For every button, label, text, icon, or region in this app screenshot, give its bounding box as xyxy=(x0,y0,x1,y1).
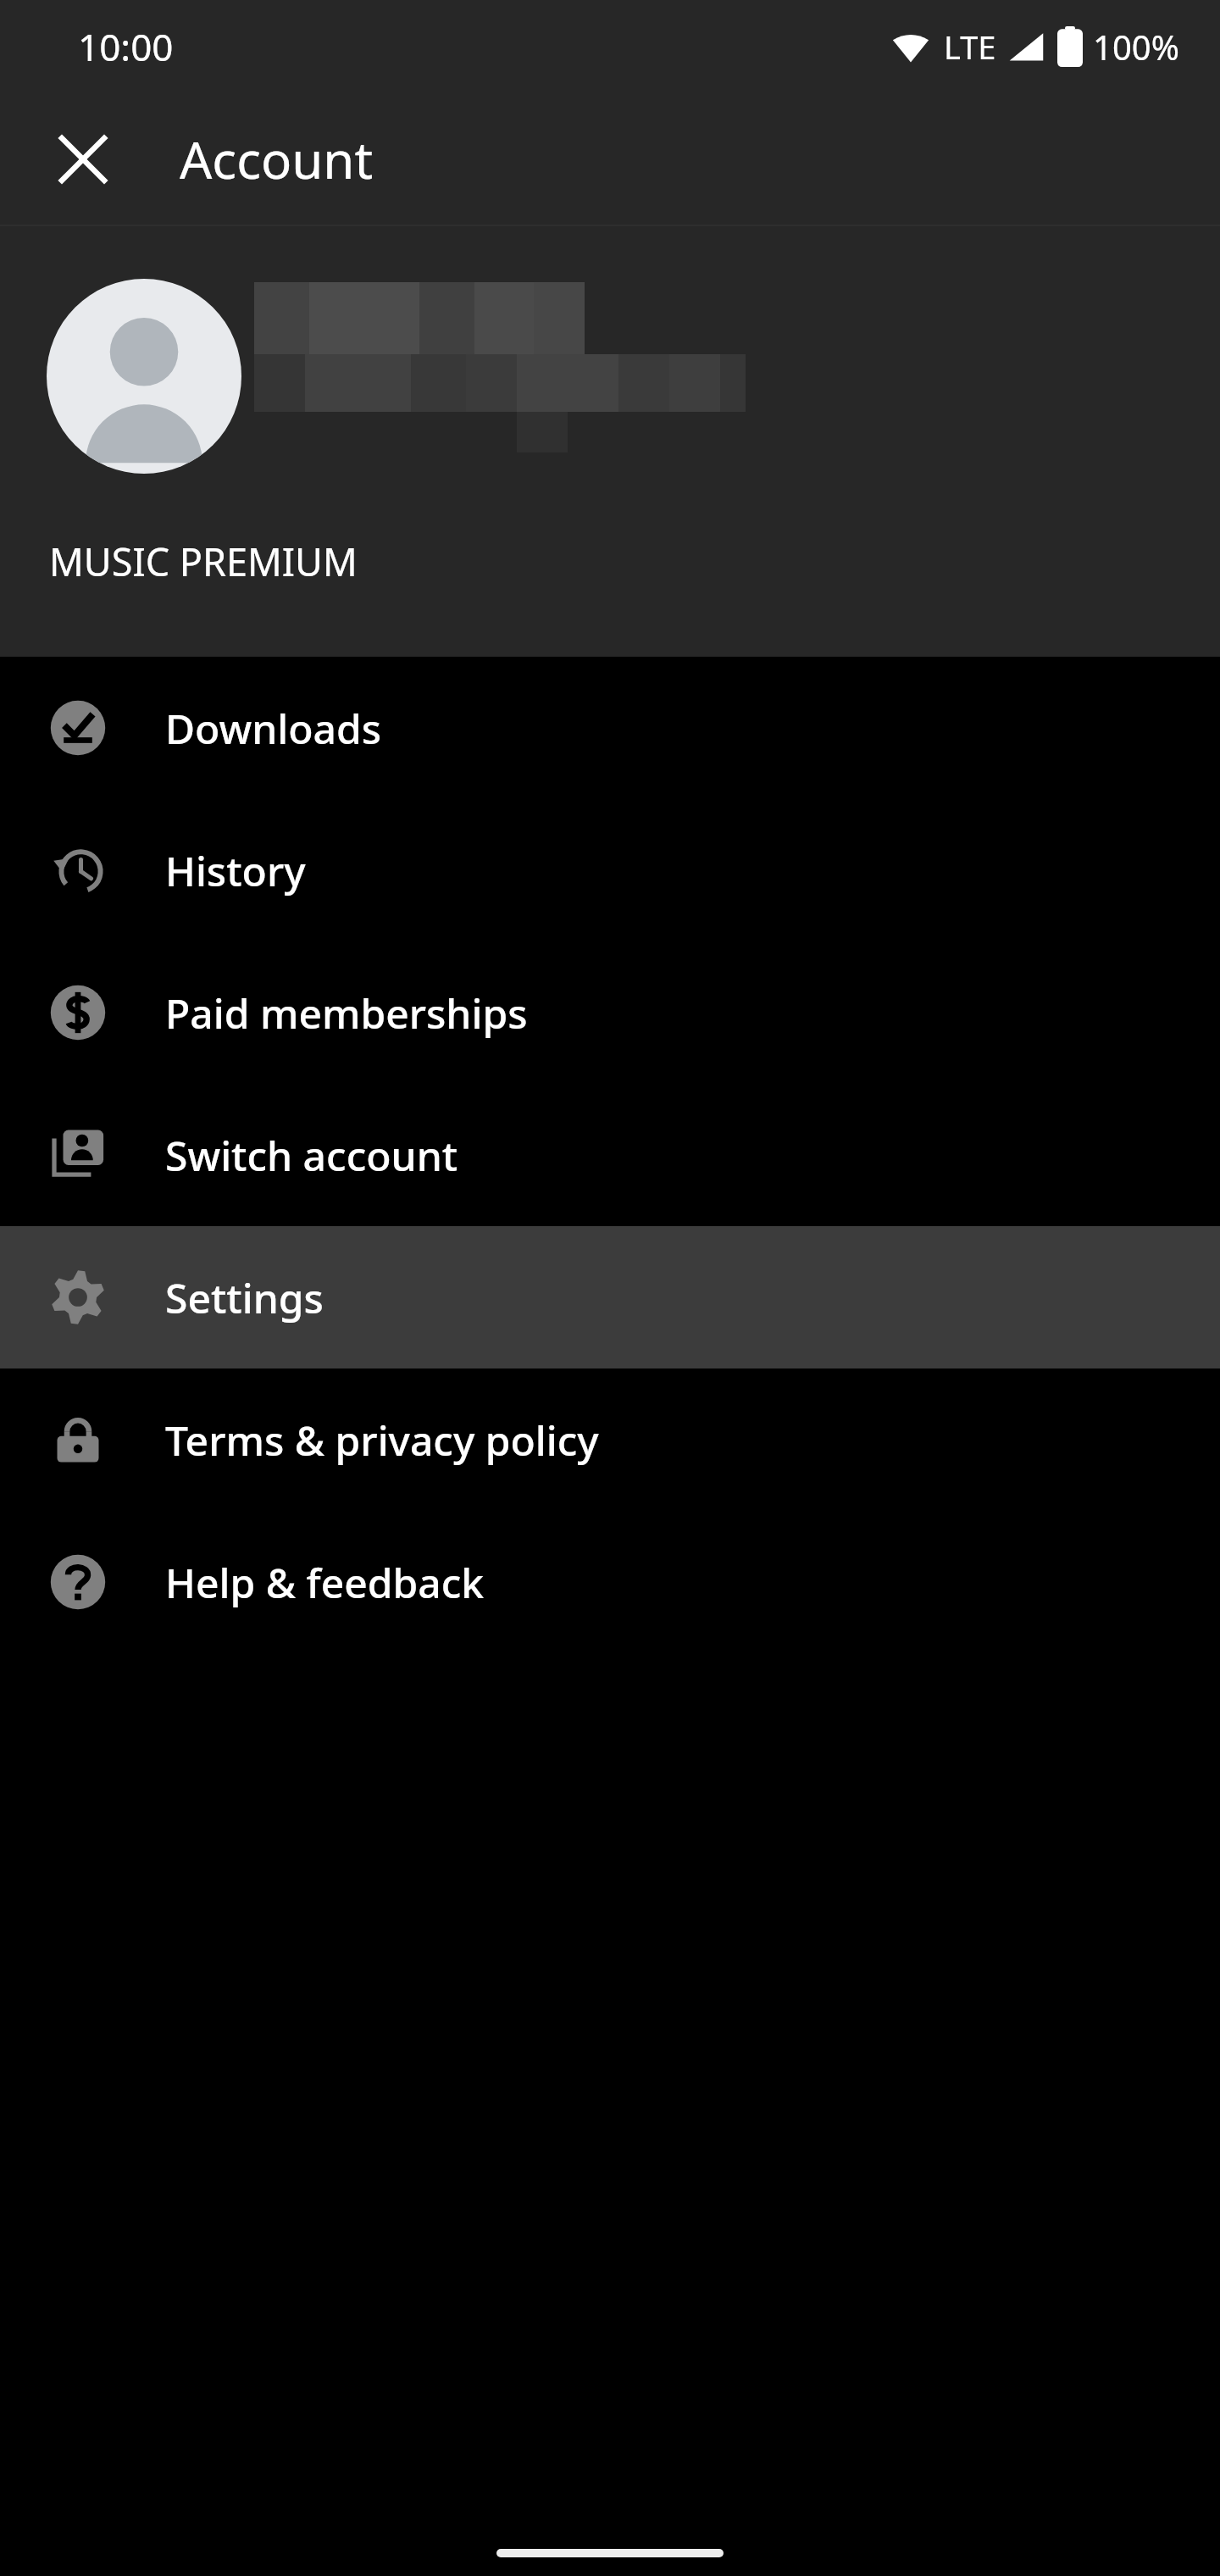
button[interactable]: Terms & privacy policy xyxy=(0,1368,1220,1511)
staticText: History xyxy=(165,843,306,898)
staticText: Paid memberships xyxy=(165,985,528,1041)
button[interactable]: Downloads xyxy=(0,657,1220,799)
staticText: 100% xyxy=(1093,24,1179,69)
staticText: Settings xyxy=(165,1270,324,1325)
staticText: Account xyxy=(180,125,374,194)
button[interactable]: Help & feedback xyxy=(0,1511,1220,1653)
button[interactable]: Switch account xyxy=(0,1084,1220,1226)
staticText: Terms & privacy policy xyxy=(165,1413,599,1468)
staticText: MUSIC PREMIUM xyxy=(49,536,358,587)
button[interactable]: History xyxy=(0,799,1220,941)
button[interactable]: Close xyxy=(42,119,124,200)
staticText: Switch account xyxy=(165,1128,458,1183)
staticText: LTE xyxy=(944,25,996,69)
button[interactable]: Profile photo xyxy=(47,279,241,474)
button[interactable]: Paid memberships xyxy=(0,941,1220,1084)
button[interactable]: Settings xyxy=(0,1226,1220,1368)
staticText: 10:00 xyxy=(78,21,174,72)
staticText: Help & feedback xyxy=(165,1555,485,1610)
staticText: Downloads xyxy=(165,701,382,756)
